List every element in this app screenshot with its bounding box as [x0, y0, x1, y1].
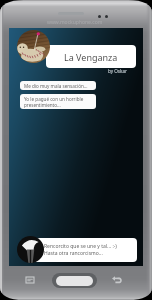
staticText: Hasta otra rancorcismo...: [44, 250, 103, 257]
staticText: Me dio muy mala sensación...: [24, 83, 88, 89]
staticText: presentimiento...: [24, 102, 61, 108]
button[interactable]: Yo le pagué con un horrible: [20, 94, 96, 109]
button[interactable]: Home: [52, 273, 97, 288]
button[interactable]: Back: [109, 272, 125, 288]
staticText: Yo le pagué con un horrible: [24, 96, 84, 102]
button[interactable]: Me dio muy mala sensación...: [20, 81, 96, 90]
button[interactable]: Reader avatar: [17, 236, 44, 263]
staticText: by Oskar: [108, 68, 127, 74]
staticText: www.mockuphone.com: [47, 19, 103, 26]
button[interactable]: La Venganza: [46, 45, 136, 68]
staticText: La Venganza: [64, 51, 118, 63]
button[interactable]: Rencorcito que se une y tal... :-): [29, 238, 137, 262]
staticText: Rencorcito que se une y tal... :-): [44, 243, 117, 250]
button[interactable]: Author avatar: [17, 30, 50, 63]
button[interactable]: Menu: [22, 272, 38, 288]
